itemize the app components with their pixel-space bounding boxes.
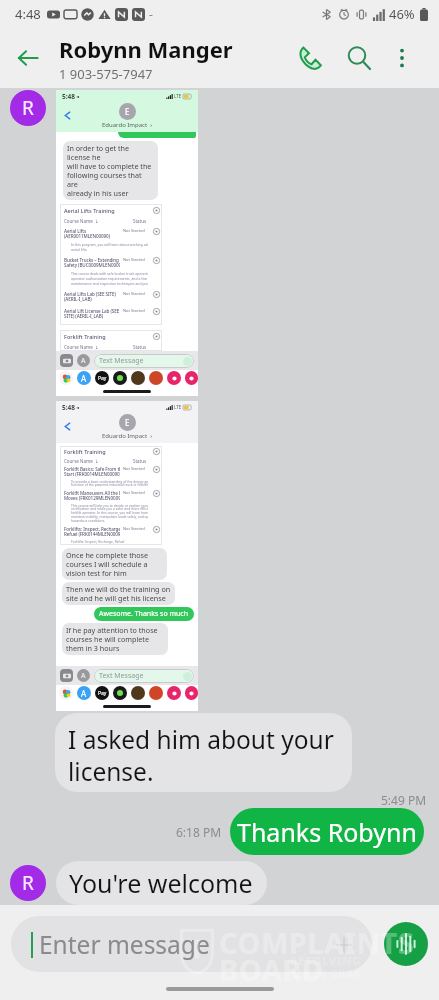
staticText: Text Message (99, 671, 144, 681)
staticText: E (125, 417, 130, 428)
staticText: This course will help you to decide or e… (71, 503, 148, 523)
staticText: Not Started (123, 291, 145, 296)
staticText: Forklift Training (64, 448, 106, 455)
staticText: RESOLVING (290, 953, 362, 968)
button[interactable]: Back (6, 36, 50, 80)
staticText: Course Name ↓ (64, 344, 99, 350)
button[interactable]: Call (287, 35, 333, 81)
staticText: Enter message (39, 928, 210, 961)
staticText: 5:49 PM (381, 792, 427, 808)
staticText: You're welcome (69, 866, 253, 900)
staticText: 5:48 (62, 403, 75, 412)
staticText: Text Message (99, 356, 144, 366)
staticText: Pay (98, 690, 107, 697)
staticText: 5:48 (62, 92, 75, 101)
staticText: Forklifts: Inspect, Recharge, Refuel (FR… (64, 526, 120, 538)
staticText: 6:18 PM (176, 824, 222, 840)
staticText: A (81, 356, 86, 366)
staticText: Status (133, 458, 147, 464)
staticText: I asked him about your license. (68, 723, 340, 788)
staticText: Once he complete those courses I will sc… (66, 550, 163, 578)
staticText: Eduardo Impact › (102, 121, 153, 129)
staticText: Aerial Lifts Lab (SEE SITE) (AERIL-I_LAB… (64, 291, 116, 303)
staticText: SINCE 2004 (290, 966, 361, 981)
staticText: LTE (174, 404, 182, 410)
staticText: - (149, 6, 153, 22)
staticText: BOARD (219, 950, 324, 989)
staticText: Not Started (123, 490, 145, 495)
staticText: Not Started (123, 257, 145, 262)
staticText: Course Name ↓ (64, 458, 99, 464)
staticText: In order to get the license he will have… (67, 143, 154, 198)
staticText: Then we will do the training on site and… (66, 584, 171, 603)
staticText: ◄ (76, 405, 80, 410)
staticText: Not Started (123, 308, 145, 313)
staticText: Robynn Manger (59, 34, 233, 64)
staticText: Awesome. Thanks so much (99, 609, 189, 619)
staticText: Forklifts: Inspect, Recharge, Refuel (71, 539, 125, 543)
staticText: Status (133, 218, 147, 224)
button[interactable]: You're welcome (56, 861, 267, 905)
staticText: Thanks Robynn (237, 815, 417, 849)
staticText: Forklift Training (64, 333, 106, 340)
staticText: A (81, 688, 87, 699)
staticText: Not Started (123, 228, 145, 233)
button[interactable]: More options (383, 39, 421, 77)
staticText: Aerial Lifts Training (64, 207, 115, 214)
button[interactable]: I asked him about your license. (55, 713, 352, 792)
staticText: To provide a basic understanding of the … (71, 479, 148, 487)
button[interactable]: Voice message (384, 922, 428, 966)
staticText: Not Started (123, 466, 145, 471)
staticText: COMPLAINTS (219, 923, 415, 962)
staticText: Eduardo Impact › (102, 432, 153, 440)
staticText: A (81, 671, 86, 681)
staticText: ◄ (76, 94, 80, 99)
staticText: E (125, 106, 130, 117)
staticText: A (81, 373, 87, 384)
staticText: Status (133, 344, 147, 350)
staticText: This course deals with safe bucket truck… (71, 271, 148, 286)
staticText: 6:18 PM (268, 907, 314, 923)
staticText: If he pay attention to those courses he … (66, 625, 164, 653)
button[interactable]: Thanks Robynn (230, 808, 424, 855)
staticText: Aerial Lifts (AER0011MLEN00090) (64, 228, 110, 240)
staticText: Aerial Lift License Lab (SEE SITE) (AERI… (64, 308, 120, 320)
button[interactable]: Search (337, 36, 381, 80)
staticText: Not Started (123, 526, 145, 531)
staticText: In this program, you will learn about wo… (71, 242, 148, 252)
staticText: Forklift Maneuvers All the Right Moves (… (64, 490, 120, 502)
staticText: Course Name ↓ (64, 218, 99, 224)
staticText: 46% (389, 5, 415, 23)
button[interactable]: Enter message (11, 916, 372, 972)
staticText: Forklift Basics: Safe From the Start (FR… (64, 466, 120, 478)
staticText: 1 903-575-7947 (59, 65, 153, 83)
staticText: R (22, 95, 34, 121)
staticText: Bucket Trucks – Extending Your Safety (B… (64, 257, 120, 269)
staticText: R (22, 870, 34, 896)
staticText: Pay (98, 375, 107, 382)
staticText: 4:48 (15, 5, 41, 23)
staticText: LTE (174, 93, 182, 99)
